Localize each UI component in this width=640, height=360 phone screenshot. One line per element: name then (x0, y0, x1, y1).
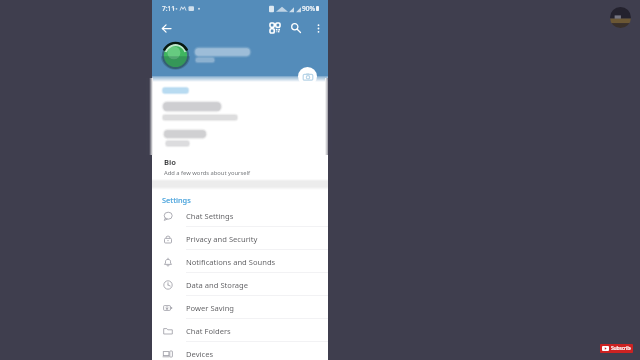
button[interactable]: More options (309, 19, 327, 37)
button[interactable]: Chat Settings (152, 204, 328, 227)
button[interactable]: Privacy and Security (152, 227, 328, 250)
staticText: Subscribe (611, 345, 631, 352)
staticText: Privacy and Security (186, 234, 258, 244)
staticText: Power Saving (186, 303, 235, 313)
button[interactable]: Power Saving (152, 296, 328, 319)
button[interactable]: Search (287, 19, 305, 37)
button[interactable]: Bio (152, 154, 328, 179)
staticText: Bio (164, 157, 177, 167)
staticText: Settings (162, 195, 191, 205)
staticText: 7:11 (162, 4, 176, 13)
button[interactable]: Data and Storage (152, 273, 328, 296)
staticText: Chat Folders (186, 326, 231, 336)
button[interactable]: Back (157, 19, 175, 37)
button[interactable]: Subscribe (600, 344, 633, 353)
staticText: Add a few words about yourself (164, 169, 250, 177)
staticText: Data and Storage (186, 280, 249, 290)
button[interactable]: Notifications and Sounds (152, 250, 328, 273)
staticText: 90% (302, 4, 316, 13)
button[interactable]: Channel avatar (610, 7, 631, 28)
button[interactable]: QR code (266, 19, 284, 37)
staticText: Chat Settings (186, 211, 234, 221)
button[interactable]: Devices (152, 342, 328, 360)
staticText: Notifications and Sounds (186, 257, 276, 267)
button[interactable]: Change profile photo (298, 67, 317, 86)
button[interactable]: Chat Folders (152, 319, 328, 342)
staticText: Devices (186, 349, 214, 359)
